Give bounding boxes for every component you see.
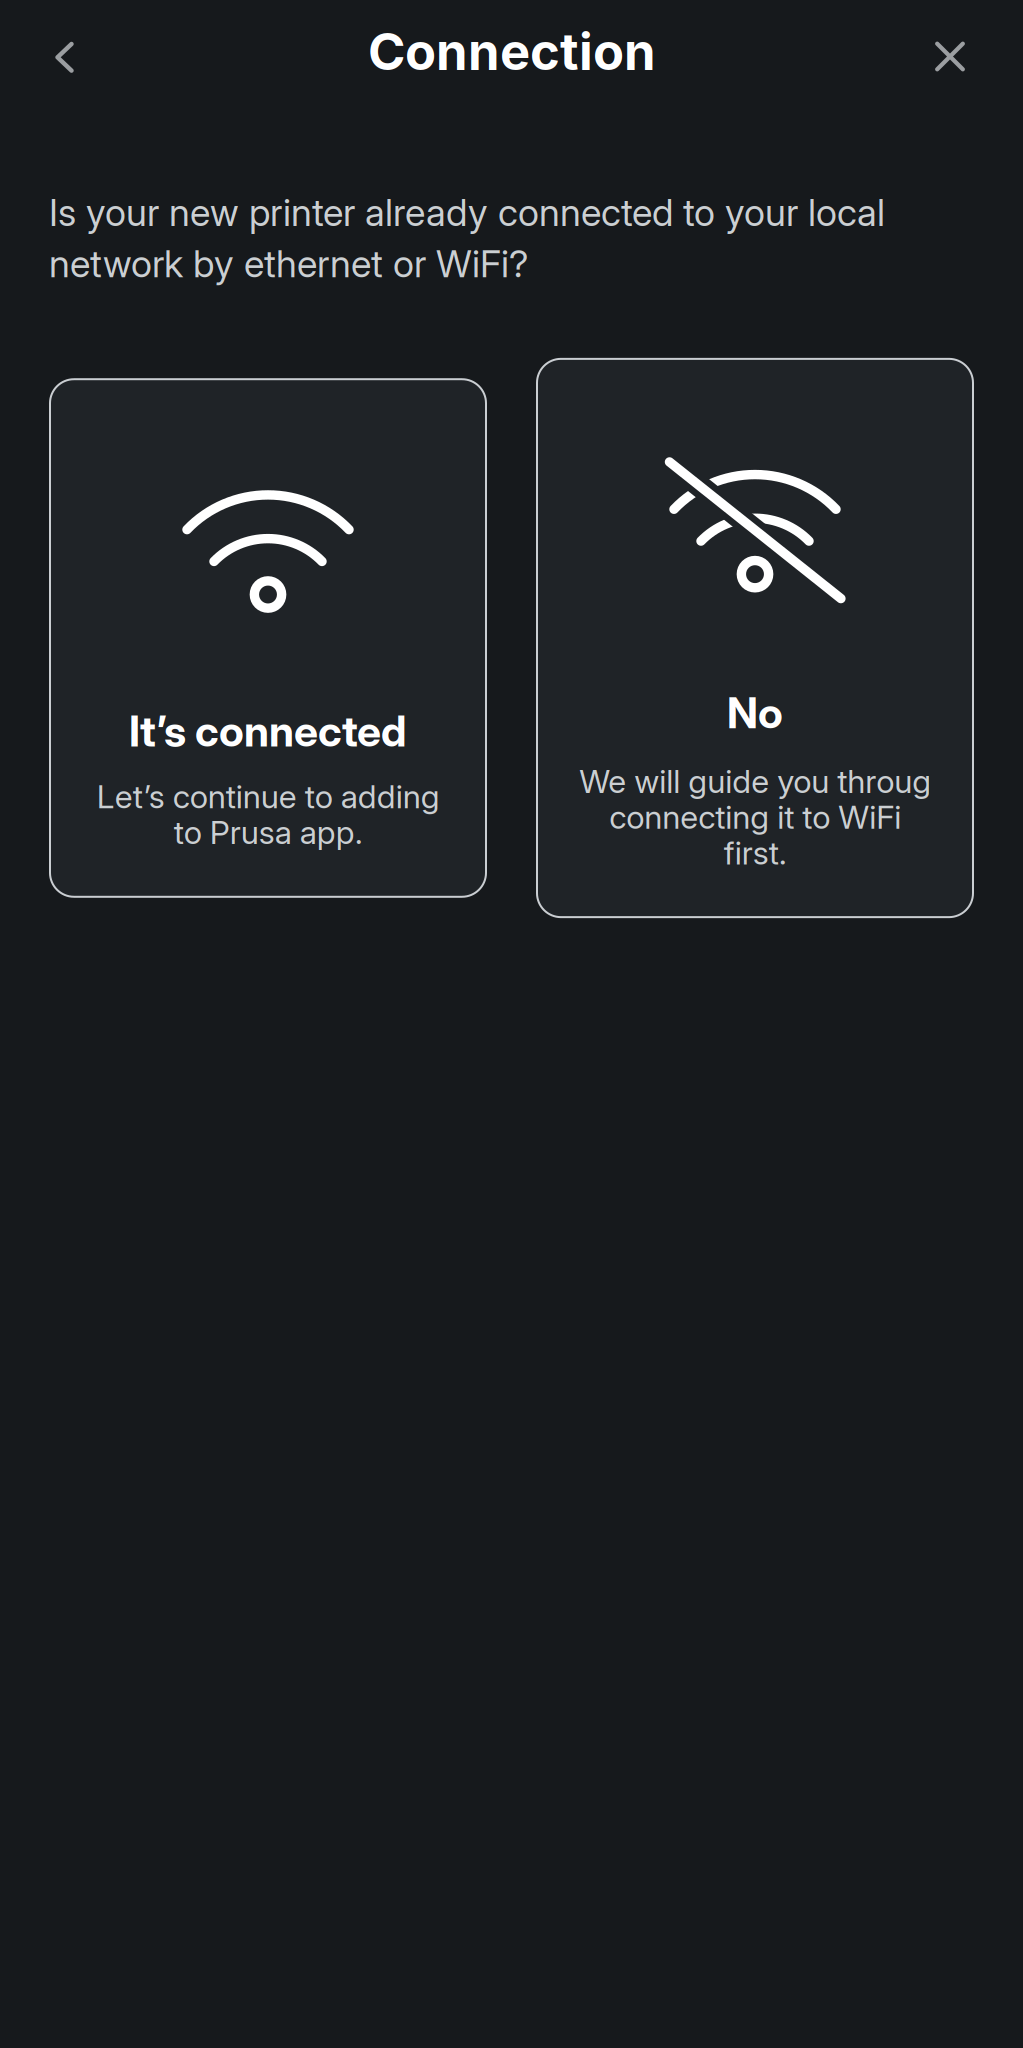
staticText: Connection bbox=[368, 21, 656, 82]
button[interactable]: It’s connected bbox=[50, 379, 486, 897]
staticText: No bbox=[727, 687, 783, 738]
staticText: We will guide you throug connecting it t… bbox=[579, 762, 931, 872]
staticText: network by ethernet or WiFi? bbox=[49, 241, 528, 286]
staticText: Is your new printer already connected to… bbox=[49, 190, 885, 235]
staticText: It’s connected bbox=[129, 705, 407, 757]
button[interactable]: Back bbox=[16, 8, 112, 104]
button[interactable]: Close bbox=[902, 8, 998, 104]
button[interactable]: No bbox=[537, 359, 973, 917]
staticText: Let’s continue to adding to Prusa app. bbox=[96, 777, 439, 852]
